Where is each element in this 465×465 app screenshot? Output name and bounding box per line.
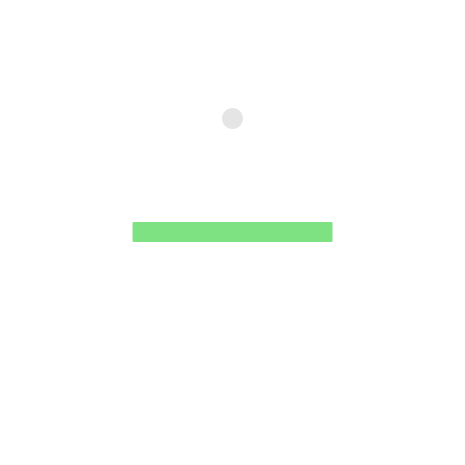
button[interactable]: Continue (132, 222, 332, 242)
